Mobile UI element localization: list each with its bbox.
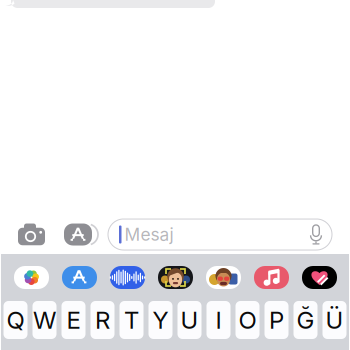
staticText: Ü [325, 305, 343, 334]
staticText: Mesaj [124, 224, 173, 245]
button[interactable]: Y [148, 301, 172, 339]
button[interactable]: Ü [322, 301, 346, 339]
button[interactable]: Camera [18, 223, 45, 245]
button[interactable]: Mesaj [108, 219, 332, 250]
staticText: Y [152, 305, 168, 334]
button[interactable]: Digital Touch [302, 266, 337, 289]
button[interactable]: R [90, 301, 114, 339]
button[interactable]: Memoji [158, 266, 193, 289]
staticText: I [215, 305, 221, 334]
button[interactable]: W [32, 301, 56, 339]
button[interactable]: T [119, 301, 143, 339]
button[interactable]: Voice [110, 266, 145, 289]
staticText: O [238, 305, 256, 334]
button[interactable]: O [235, 301, 259, 339]
button[interactable]: iMessage apps [64, 223, 96, 245]
staticText: P [269, 305, 284, 334]
button[interactable]: Animoji [206, 266, 241, 289]
staticText: Q [6, 305, 24, 334]
button[interactable]: Photos [14, 266, 49, 289]
button[interactable]: Music [254, 266, 289, 289]
button[interactable]: Ğ [293, 301, 317, 339]
staticText: R [95, 305, 110, 334]
button[interactable]: P [264, 301, 288, 339]
staticText: U [180, 305, 198, 334]
button[interactable]: I [206, 301, 230, 339]
button[interactable]: E [61, 301, 85, 339]
staticText: T [124, 305, 139, 334]
button[interactable]: App Store [62, 266, 97, 289]
button[interactable]: Q [3, 301, 27, 339]
staticText: W [33, 305, 56, 334]
staticText: E [66, 305, 80, 334]
staticText: Ğ [296, 305, 314, 334]
button[interactable]: U [177, 301, 201, 339]
